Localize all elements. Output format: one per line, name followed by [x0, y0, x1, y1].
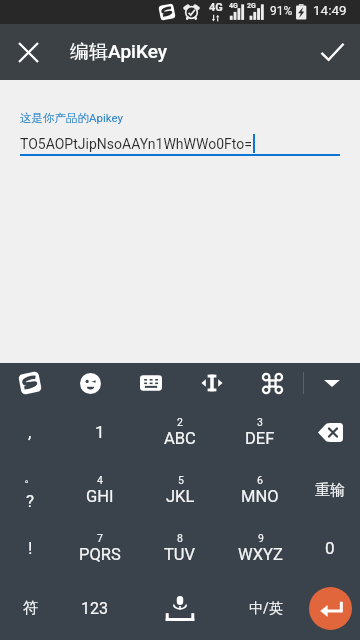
button[interactable]: Shortcuts — [249, 363, 295, 403]
staticText: 7 — [97, 532, 103, 544]
button[interactable]: 4 — [60, 461, 140, 519]
staticText: ? — [26, 491, 35, 511]
staticText: 5 — [178, 474, 184, 486]
button[interactable]: , — [0, 403, 60, 461]
button[interactable]: 3 — [220, 403, 300, 461]
staticText: TO5AOPtJipNsoAAYn1WhWWo0Fto= — [20, 136, 252, 152]
button[interactable]: Space / voice input — [128, 577, 232, 640]
staticText: 14:49 — [313, 2, 347, 18]
button[interactable]: 123 — [60, 577, 128, 640]
staticText: 这是你产品的Apikey — [20, 111, 123, 125]
staticText: 符 — [23, 599, 38, 618]
other: Backspace — [318, 423, 343, 442]
button[interactable]: 重输 — [300, 461, 360, 519]
button[interactable]: Enter — [300, 577, 360, 640]
staticText: 0 — [325, 538, 335, 558]
button[interactable]: Close — [0, 24, 56, 80]
staticText: 编辑ApiKey — [70, 40, 168, 64]
staticText: 1 — [95, 422, 105, 442]
staticText: 123 — [81, 599, 108, 618]
button[interactable]: 5 — [140, 461, 220, 519]
button[interactable]: Hide keyboard — [309, 363, 355, 403]
staticText: 4G — [229, 2, 238, 10]
staticText: WXYZ — [238, 545, 283, 564]
button[interactable]: 8 — [140, 519, 220, 577]
staticText: 91% — [270, 4, 293, 18]
staticText: 4 — [97, 474, 103, 486]
button[interactable]: 7 — [60, 519, 140, 577]
button[interactable]: 符 — [0, 577, 60, 640]
button[interactable]: Save — [304, 24, 360, 80]
button[interactable]: 6 — [220, 461, 300, 519]
staticText: ABC — [164, 429, 196, 448]
button[interactable]: 1 — [60, 403, 140, 461]
staticText: GHI — [86, 487, 114, 506]
staticText: 2G — [247, 2, 256, 10]
button[interactable]: 中/英 — [232, 577, 300, 640]
staticText: 中/英 — [249, 600, 283, 618]
button[interactable]: ! — [0, 519, 60, 577]
button[interactable]: Move cursor — [189, 363, 235, 403]
staticText: JKL — [166, 487, 195, 506]
button[interactable]: Keyboard layout — [128, 363, 174, 403]
staticText: 2 — [177, 416, 183, 428]
staticText: 9 — [258, 532, 264, 544]
staticText: TUV — [164, 545, 196, 564]
button[interactable]: 0 — [300, 519, 360, 577]
button[interactable]: 。 — [0, 461, 60, 519]
button[interactable]: 9 — [220, 519, 300, 577]
staticText: PQRS — [79, 545, 121, 564]
staticText: 6 — [257, 474, 263, 486]
staticText: 4G — [209, 1, 223, 14]
staticText: DEF — [245, 429, 275, 448]
staticText: 重输 — [315, 481, 345, 500]
staticText: MNO — [241, 487, 279, 506]
staticText: 。 — [24, 469, 37, 485]
staticText: , — [28, 422, 32, 442]
staticText: 3 — [257, 416, 263, 428]
button[interactable]: Emoji — [67, 363, 113, 403]
button[interactable]: Backspace — [300, 403, 360, 461]
staticText: ! — [28, 538, 33, 558]
staticText: 8 — [177, 532, 183, 544]
button[interactable]: 2 — [140, 403, 220, 461]
button[interactable]: Sogou input — [7, 363, 53, 403]
